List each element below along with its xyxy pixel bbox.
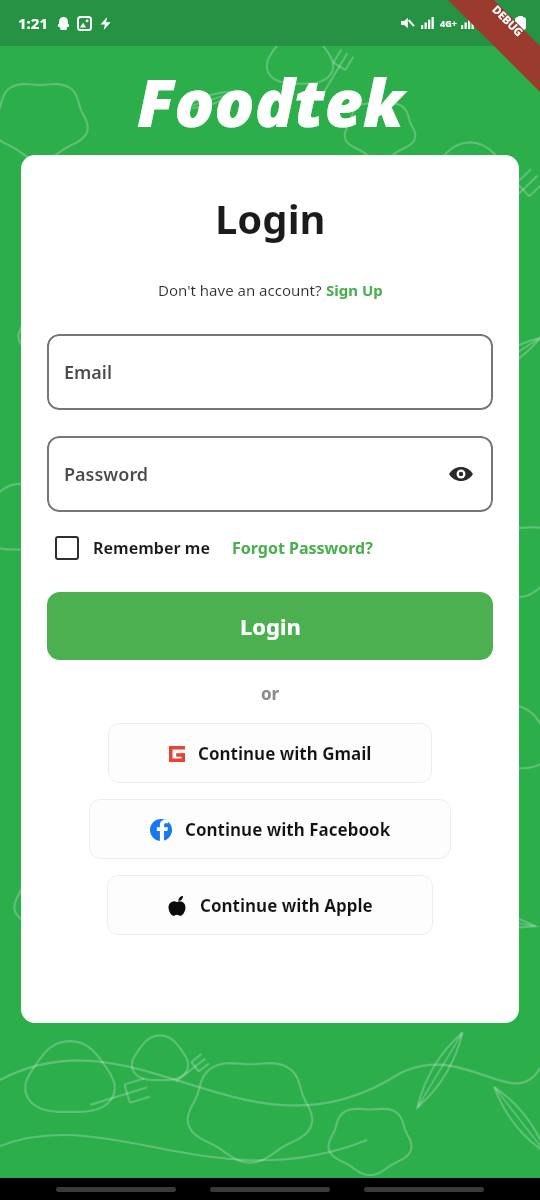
button[interactable]: Sign Up <box>326 280 383 300</box>
staticText: Don't have an account? <box>158 280 326 300</box>
staticText: or <box>261 682 280 705</box>
staticText: Password <box>64 462 149 487</box>
button[interactable]: Email <box>47 334 493 410</box>
staticText: Login <box>215 191 326 245</box>
staticText: Forgot Password? <box>232 537 373 559</box>
staticText: Continue with Apple <box>200 894 373 917</box>
staticText: Email <box>64 360 113 385</box>
staticText: Remember me <box>93 537 210 559</box>
staticText: Continue with Gmail <box>198 742 372 765</box>
button[interactable]: Continue with Gmail <box>108 723 432 783</box>
staticText: Login <box>240 611 301 641</box>
staticText: 4G+ <box>440 17 457 29</box>
staticText: Foodtek <box>137 56 404 146</box>
staticText: 79% <box>481 13 512 33</box>
button[interactable]: Continue with Apple <box>107 875 433 935</box>
button[interactable]: Password <box>47 436 493 512</box>
staticText: Sign Up <box>326 280 383 300</box>
button[interactable]: Continue with Facebook <box>89 799 451 859</box>
staticText: 1:21 <box>18 13 48 33</box>
button[interactable]: Login <box>47 592 493 660</box>
button[interactable]: Remember me <box>55 536 210 560</box>
button[interactable]: Forgot Password? <box>232 537 373 559</box>
staticText: Continue with Facebook <box>185 818 391 841</box>
button[interactable]: Show password <box>446 459 476 489</box>
staticText: DEBUG <box>489 2 527 39</box>
